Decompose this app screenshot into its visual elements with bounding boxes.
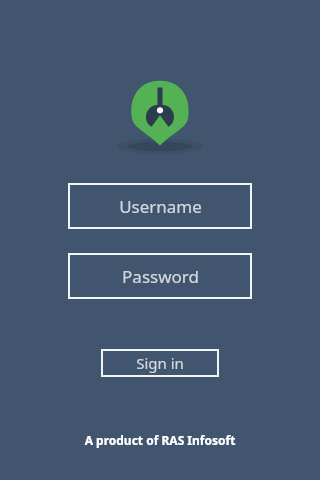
button[interactable]: Sign in <box>101 349 219 377</box>
staticText: Sign in <box>136 353 184 373</box>
button[interactable]: Password <box>68 253 252 299</box>
staticText: Username <box>119 195 202 218</box>
staticText: A product of RAS Infosoft <box>0 432 320 448</box>
other: App logo <box>120 78 200 158</box>
staticText: Password <box>122 265 199 288</box>
button[interactable]: Username <box>68 183 252 229</box>
